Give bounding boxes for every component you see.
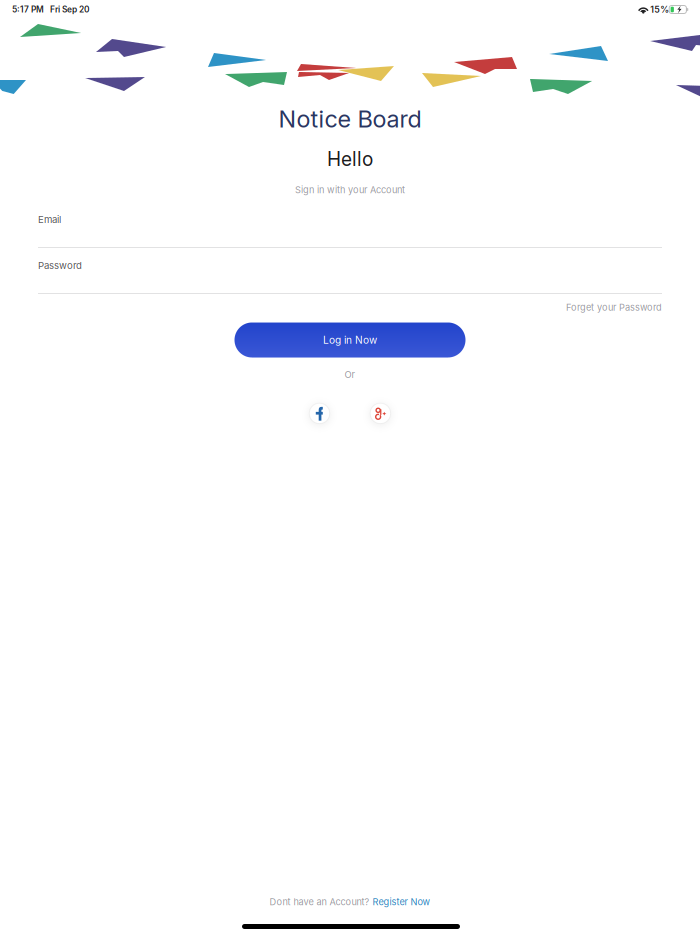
staticText: Hello <box>327 147 373 170</box>
button[interactable]: Register Now <box>372 896 430 907</box>
button[interactable]: Sign in with Google <box>370 403 391 424</box>
staticText: Email <box>38 214 61 225</box>
staticText: Password <box>38 260 82 271</box>
button[interactable]: Sign in with Facebook <box>309 403 330 424</box>
button[interactable]: Log in Now <box>234 322 465 357</box>
staticText: 15% <box>650 4 669 15</box>
button[interactable]: Forget your Password <box>38 300 662 315</box>
staticText: Notice Board <box>278 105 421 133</box>
staticText: 5:17 PM <box>12 4 44 15</box>
staticText: Register Now <box>372 896 430 907</box>
staticText: Dont have an Account? <box>269 896 369 907</box>
staticText: Forget your Password <box>566 302 662 313</box>
staticText: Sign in with your Account <box>295 184 405 195</box>
staticText: Fri Sep 20 <box>44 4 90 15</box>
staticText: Log in Now <box>323 334 377 346</box>
staticText: Or <box>344 369 355 380</box>
